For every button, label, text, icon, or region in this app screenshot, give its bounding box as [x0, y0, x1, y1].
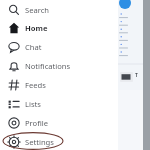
staticText: Notifications: [25, 61, 71, 71]
button[interactable]: Profile: [0, 113, 118, 132]
button[interactable]: Chat: [0, 37, 118, 56]
staticText: T: [135, 72, 138, 79]
staticText: Chat: [25, 42, 42, 52]
staticText: Profile: [25, 118, 48, 128]
staticText: Home: [25, 23, 48, 33]
staticText: Settings: [25, 137, 54, 147]
staticText: Search: [25, 5, 50, 15]
button[interactable]: Settings: [0, 132, 118, 150]
button[interactable]: Feeds: [0, 75, 118, 94]
staticText: Lists: [25, 99, 41, 109]
button[interactable]: Home: [0, 18, 118, 37]
button[interactable]: Notifications: [0, 56, 118, 75]
button[interactable]: Lists: [0, 94, 118, 113]
staticText: Feeds: [25, 80, 46, 90]
button[interactable]: Search: [0, 0, 118, 19]
